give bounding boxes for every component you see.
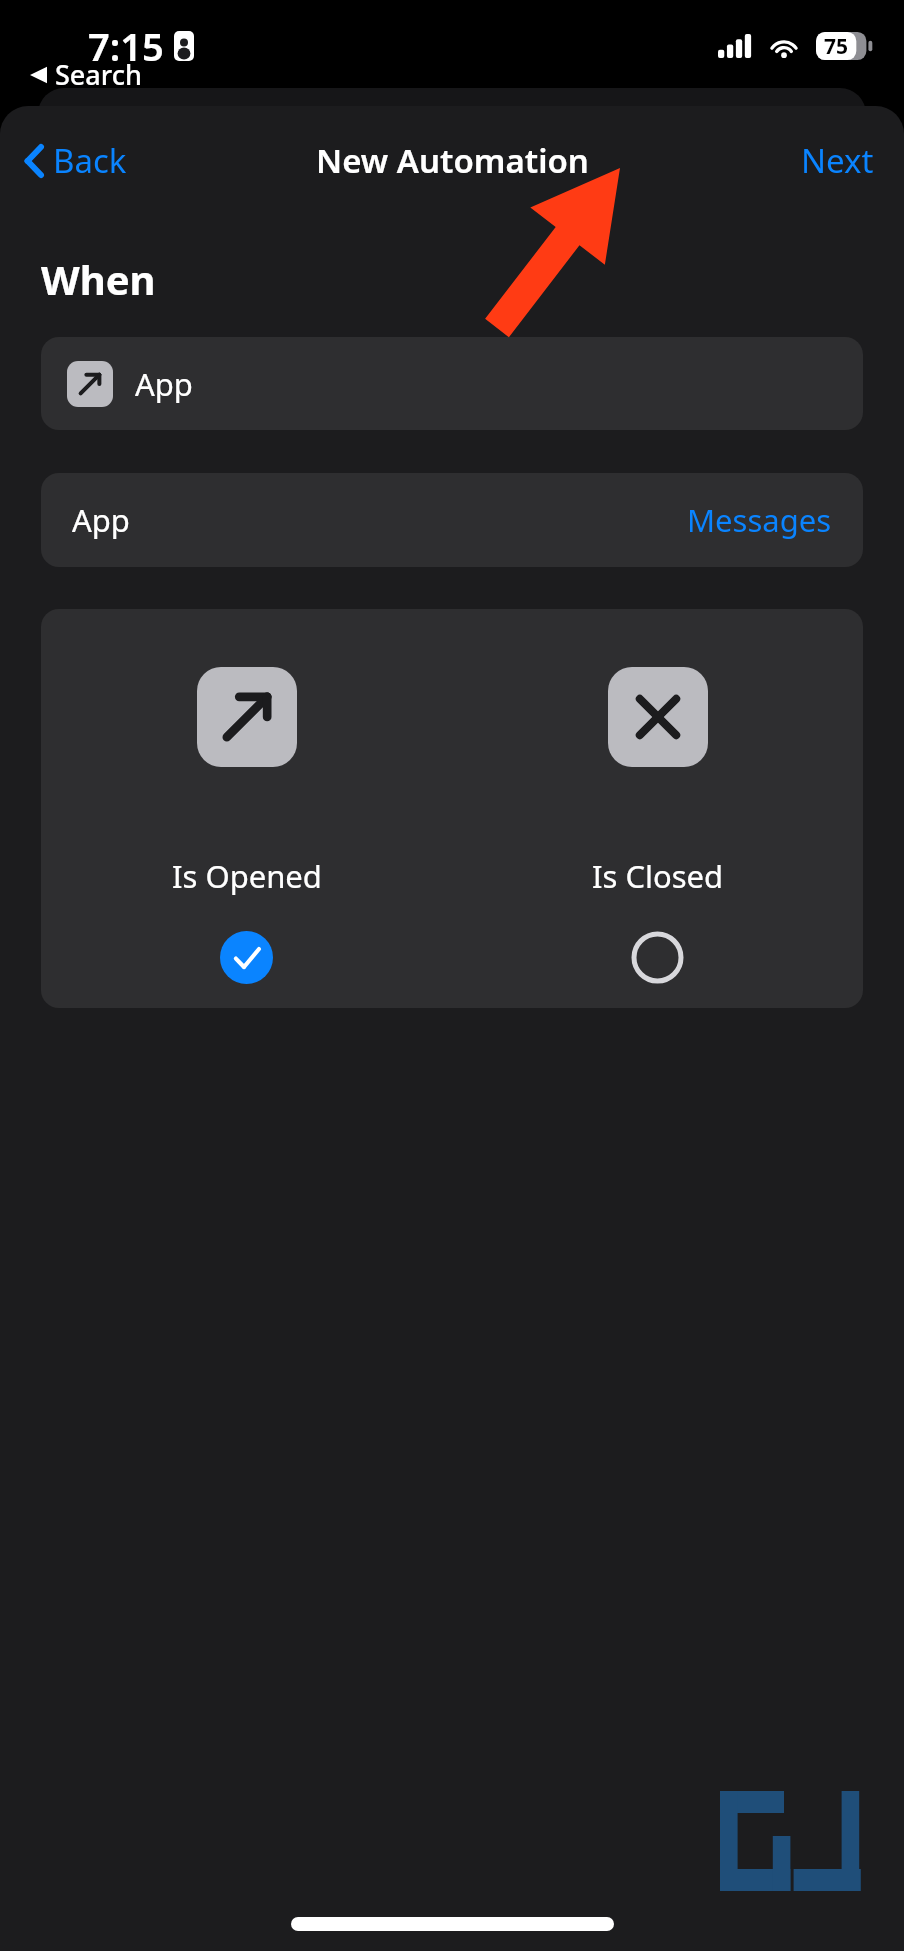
staticText: Search xyxy=(55,56,142,93)
staticText: Back xyxy=(53,138,127,183)
staticText: App xyxy=(72,499,130,541)
button[interactable]: Is Opened xyxy=(41,609,452,1008)
button[interactable]: Next xyxy=(793,130,882,191)
staticText: New Automation xyxy=(316,138,589,183)
staticText: App xyxy=(135,363,193,405)
button[interactable]: App xyxy=(41,337,863,430)
staticText: Is Opened xyxy=(172,855,322,897)
staticText: Messages xyxy=(687,499,832,541)
staticText: 75 xyxy=(824,32,849,60)
staticText: 7:15 xyxy=(88,20,164,72)
button[interactable]: Search xyxy=(26,52,146,97)
button[interactable]: Back xyxy=(18,130,133,191)
button[interactable]: App xyxy=(41,473,863,567)
staticText: Is Closed xyxy=(592,855,724,897)
staticText: Next xyxy=(801,138,874,183)
staticText: When xyxy=(41,252,156,306)
button[interactable]: Is Closed xyxy=(452,609,863,1008)
